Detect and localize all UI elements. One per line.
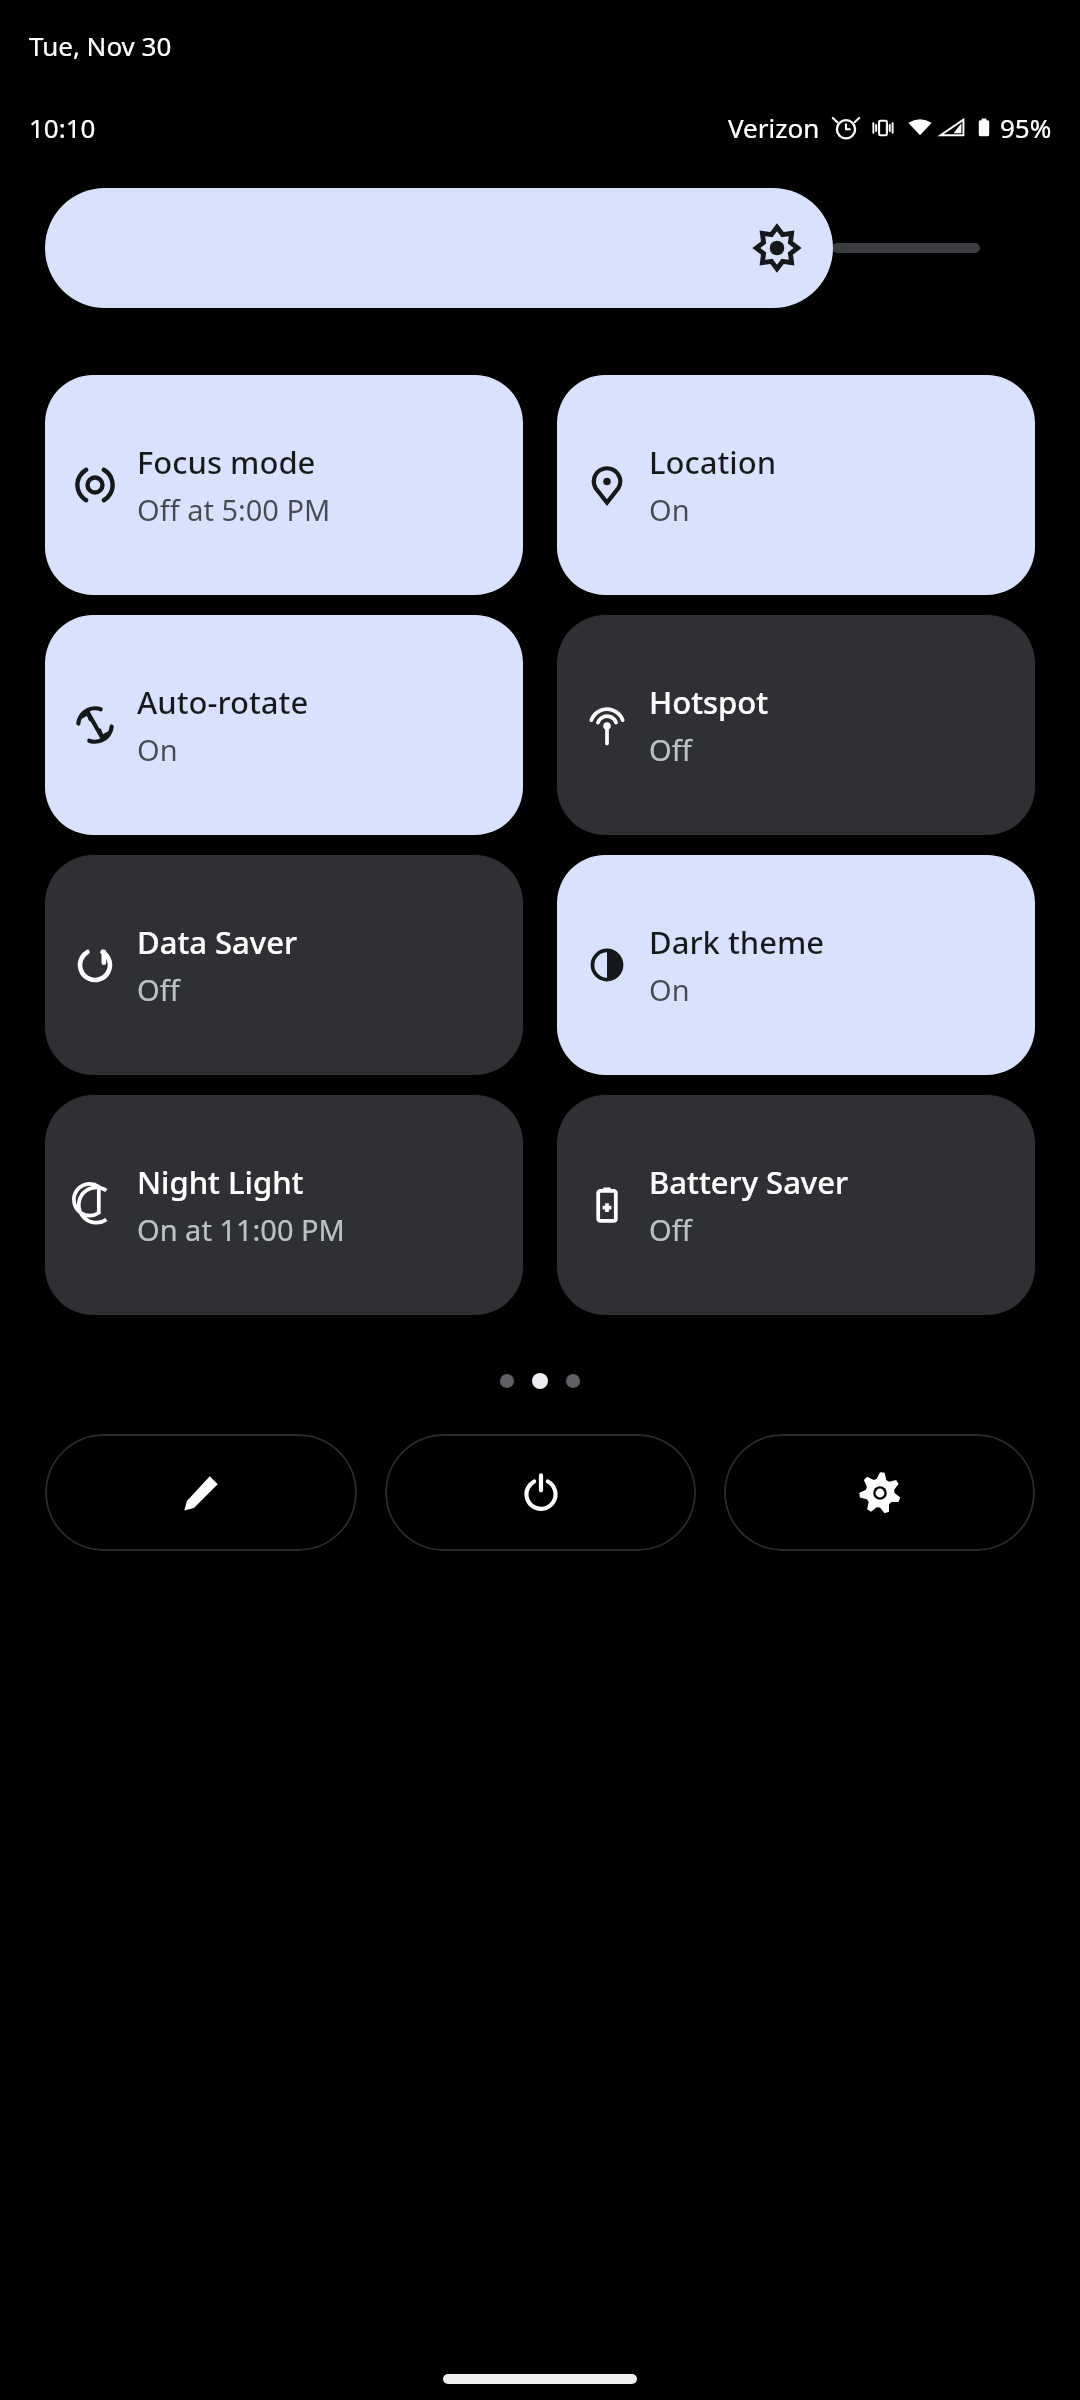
staticText: Data Saver xyxy=(137,921,298,963)
staticText: On at 11:00 PM xyxy=(137,1210,345,1249)
staticText: Auto-rotate xyxy=(137,681,309,723)
staticText: Tue, Nov 30 xyxy=(29,28,172,63)
staticText: Off xyxy=(649,730,692,769)
staticText: On xyxy=(649,490,690,529)
button[interactable]: Location xyxy=(557,375,1035,595)
button[interactable]: Data Saver xyxy=(45,855,523,1075)
staticText: Off xyxy=(137,970,180,1009)
staticText: 95% xyxy=(1000,110,1052,145)
button[interactable]: Edit xyxy=(45,1434,357,1551)
staticText: Location xyxy=(649,441,777,483)
button[interactable]: Night Light xyxy=(45,1095,523,1315)
button[interactable]: Battery Saver xyxy=(557,1095,1035,1315)
staticText: On xyxy=(137,730,178,769)
staticText: Off at 5:00 PM xyxy=(137,490,331,529)
staticText: 10:10 xyxy=(29,110,96,145)
button[interactable]: Hotspot xyxy=(557,615,1035,835)
staticText: Night Light xyxy=(137,1161,304,1203)
staticText: On xyxy=(649,970,690,1009)
button[interactable]: Settings xyxy=(724,1434,1035,1551)
staticText: Dark theme xyxy=(649,921,825,963)
staticText: Focus mode xyxy=(137,441,316,483)
button[interactable]: Dark theme xyxy=(557,855,1035,1075)
staticText: Verizon xyxy=(728,110,820,145)
staticText: Battery Saver xyxy=(649,1161,849,1203)
staticText: Off xyxy=(649,1210,692,1249)
staticText: Hotspot xyxy=(649,681,769,723)
button[interactable]: Auto-rotate xyxy=(45,615,523,835)
button[interactable]: Power xyxy=(385,1434,696,1551)
button[interactable]: Brightness xyxy=(45,188,1035,308)
button[interactable]: Focus mode xyxy=(45,375,523,595)
